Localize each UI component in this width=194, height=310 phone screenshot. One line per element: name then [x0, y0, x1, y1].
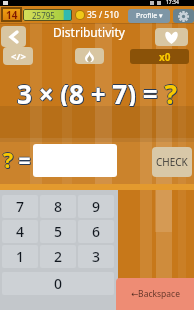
staticText: 3 × (8 + 7) = ? — [16, 76, 176, 106]
staticText: 35 / 510 — [87, 9, 119, 21]
staticText: Distributivity — [53, 24, 125, 40]
staticText: ? = — [3, 145, 31, 174]
staticText: 3 × (8 + 7) = ? — [18, 76, 178, 106]
staticText: ? = — [4, 146, 32, 175]
staticText: 6 — [92, 222, 101, 241]
staticText: 3 × (8 + 7) = ? — [17, 76, 177, 106]
staticText: ? = — [3, 146, 31, 175]
staticText: 25795 — [32, 10, 55, 21]
staticText: ? = — [2, 146, 30, 175]
staticText: 3 — [92, 247, 101, 266]
staticText: 2 — [54, 247, 63, 266]
staticText: 3 × (8 + 7) = ? — [17, 77, 177, 107]
staticText: 8 — [54, 197, 63, 216]
staticText: 0 — [54, 274, 63, 293]
staticText: ? = — [3, 147, 31, 176]
staticText: Profile ▾ — [136, 11, 163, 21]
staticText: x0 — [159, 50, 171, 64]
staticText: 4 — [16, 222, 25, 241]
staticText: ←Backspace — [131, 288, 180, 300]
staticText: 9 — [92, 197, 101, 216]
staticText: 5 — [54, 222, 63, 241]
staticText: 1 — [16, 247, 25, 266]
staticText: </> — [11, 50, 26, 63]
staticText: CHECK — [156, 155, 188, 169]
staticText: ? = — [4, 147, 32, 176]
staticText: 17:34 — [166, 0, 179, 5]
staticText: 14 — [6, 8, 18, 22]
staticText: 7 — [16, 197, 25, 216]
staticText: 3 × (8 + 7) = ? — [17, 75, 177, 105]
staticText: 3 × (8 + 7) = ? — [18, 77, 178, 107]
